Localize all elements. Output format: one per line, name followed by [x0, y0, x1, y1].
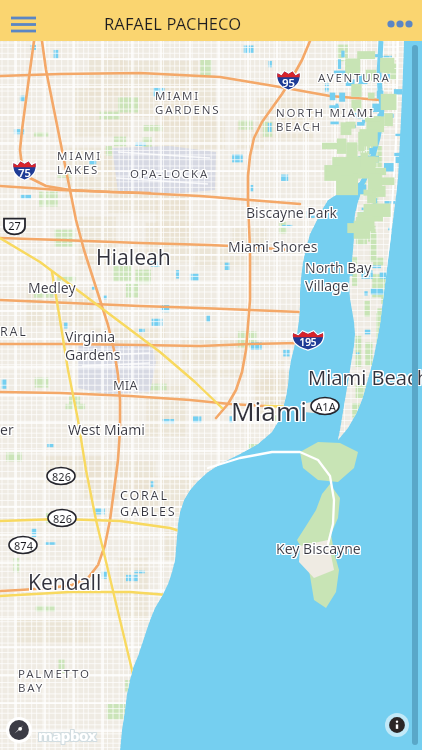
staticText: North Bay Village — [306, 258, 373, 295]
staticText: MIAMI LAKES — [58, 148, 104, 178]
staticText: Miami Shores — [229, 237, 319, 256]
staticText: Miami Shores — [227, 236, 317, 255]
staticText: West Miami — [68, 421, 145, 440]
staticText: MIAMI GARDENS — [155, 88, 221, 118]
staticText: North Bay Village — [304, 259, 371, 296]
staticText: AVENTURA — [318, 70, 391, 86]
staticText: Miami — [230, 393, 306, 428]
staticText: MIA — [114, 375, 139, 393]
staticText: Medley — [27, 278, 75, 297]
staticText: CORAL GABLES — [119, 488, 176, 521]
staticText: North Bay Village — [305, 258, 372, 295]
staticText: PALMETTO BAY — [19, 665, 92, 695]
button[interactable]: Info — [385, 713, 409, 737]
staticText: Virginia Gardens — [65, 328, 121, 365]
staticText: Virginia Gardens — [65, 327, 121, 364]
staticText: Biscayne Park — [246, 203, 337, 222]
staticText: NORTH MIAMI BEACH — [277, 105, 376, 135]
staticText: Miami Beach — [309, 365, 422, 392]
staticText: Hialeah — [96, 243, 171, 272]
staticText: MIAMI GARDENS — [155, 89, 221, 119]
staticText: PALMETTO BAY — [19, 666, 92, 696]
staticText: Virginia Gardens — [66, 327, 122, 364]
staticText: OPA-LOCKA — [131, 167, 211, 183]
staticText: MIA — [114, 376, 139, 394]
staticText: Miami Beach — [309, 363, 422, 390]
staticText: Miami — [230, 394, 306, 429]
staticText: NORTH MIAMI BEACH — [276, 106, 375, 136]
staticText: Miami Beach — [308, 364, 422, 391]
staticText: MIAMI LAKES — [56, 148, 102, 178]
staticText: OPA-LOCKA — [130, 165, 210, 181]
staticText: Kendall — [27, 568, 101, 597]
staticText: RAL — [0, 322, 28, 339]
staticText: AVENTURA — [317, 71, 390, 87]
staticText: Biscayne Park — [247, 203, 338, 222]
staticText: MIAMI LAKES — [57, 148, 103, 178]
staticText: Virginia Gardens — [66, 326, 122, 363]
staticText: MIA — [114, 377, 139, 395]
staticText: North Bay Village — [306, 259, 373, 296]
staticText: er — [0, 419, 13, 438]
staticText: Hialeah — [96, 244, 171, 273]
staticText: PALMETTO BAY — [18, 666, 91, 696]
staticText: CORAL GABLES — [119, 486, 176, 519]
staticText: West Miami — [67, 421, 144, 440]
staticText: MIAMI LAKES — [56, 147, 102, 177]
staticText: Virginia Gardens — [64, 327, 120, 364]
staticText: Miami Beach — [308, 363, 422, 390]
staticText: Biscayne Park — [247, 204, 338, 223]
staticText: mapbox — [37, 726, 95, 746]
button[interactable]: Menu — [0, 4, 48, 44]
staticText: Hialeah — [97, 243, 172, 272]
staticText: Miami — [231, 392, 307, 427]
staticText: er — [1, 421, 15, 440]
staticText: er — [0, 420, 14, 439]
staticText: Medley — [28, 278, 76, 297]
staticText: Kendall — [29, 569, 103, 598]
staticText: RAL — [0, 323, 28, 340]
staticText: OPA-LOCKA — [129, 165, 209, 181]
staticText: MIA — [112, 377, 137, 395]
staticText: AVENTURA — [317, 70, 390, 86]
staticText: Hialeah — [97, 244, 172, 273]
staticText: er — [0, 419, 14, 438]
staticText: Medley — [28, 279, 76, 298]
staticText: Biscayne Park — [246, 204, 337, 223]
staticText: MIAMI LAKES — [57, 147, 103, 177]
staticText: Medley — [29, 277, 77, 296]
staticText: NORTH MIAMI BEACH — [277, 104, 376, 134]
staticText: AVENTURA — [318, 71, 391, 87]
staticText: CORAL GABLES — [120, 486, 177, 519]
button[interactable]: Mapbox — [3, 717, 107, 745]
staticText: Kendall — [28, 569, 102, 598]
staticText: Miami Shores — [228, 237, 318, 256]
staticText: West Miami — [69, 420, 146, 439]
staticText: Miami — [232, 394, 308, 429]
staticText: RAL — [0, 324, 28, 341]
staticText: mapbox — [39, 726, 97, 746]
button[interactable]: More options — [378, 0, 422, 41]
staticText: Key Biscayne — [276, 539, 361, 558]
staticText: Biscayne Park — [245, 202, 336, 221]
staticText: MIAMI GARDENS — [156, 89, 222, 119]
staticText: OPA-LOCKA — [129, 167, 209, 183]
staticText: MIA — [113, 377, 138, 395]
staticText: Miami Beach — [307, 364, 422, 391]
staticText: Miami Beach — [308, 365, 422, 392]
staticText: NORTH MIAMI BEACH — [276, 104, 375, 134]
staticText: MIAMI GARDENS — [155, 87, 221, 117]
staticText: mapbox — [38, 726, 96, 746]
staticText: Key Biscayne — [275, 540, 360, 559]
staticText: Medley — [27, 279, 75, 298]
staticText: Miami — [230, 392, 306, 427]
staticText: Kendall — [28, 568, 102, 597]
staticText: Hialeah — [95, 242, 170, 271]
staticText: Kendall — [27, 567, 101, 596]
staticText: AVENTURA — [319, 69, 392, 85]
staticText: OPA-LOCKA — [131, 165, 211, 181]
staticText: RAFAEL PACHECO — [104, 12, 242, 34]
staticText: Miami — [231, 394, 307, 429]
staticText: MIA — [112, 376, 137, 394]
staticText: 195 — [299, 335, 317, 349]
